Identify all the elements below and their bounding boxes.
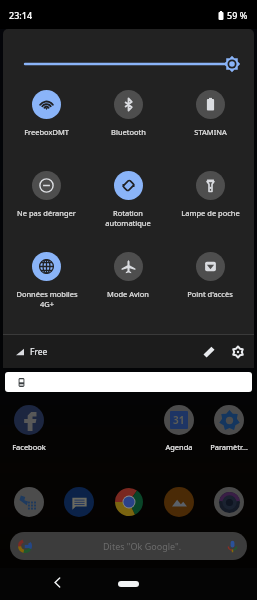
button[interactable]: Agenda — [164, 405, 194, 435]
button[interactable]: Téléphone — [14, 487, 44, 517]
staticText: Mode Avion — [107, 289, 149, 299]
button[interactable]: Chrome — [114, 487, 144, 517]
button[interactable]: Point d'accès — [169, 238, 251, 319]
button[interactable]: Messages — [64, 487, 94, 517]
staticText: FreeboxDMT — [24, 127, 69, 137]
button[interactable]: Paramètres — [214, 405, 244, 435]
staticText: STAMINA — [194, 127, 227, 137]
button[interactable]: Edit tiles — [197, 340, 221, 364]
button[interactable]: Brightness — [3, 29, 254, 76]
staticText: Facebook — [12, 442, 46, 452]
staticText: Paramètr… — [210, 442, 248, 452]
button[interactable]: Home — [118, 581, 139, 587]
staticText: Point d'accès — [187, 289, 233, 299]
button[interactable]: STAMINA — [169, 76, 251, 157]
staticText: 23:14 — [9, 9, 33, 21]
button[interactable]: Back — [48, 573, 66, 591]
button[interactable]: Données mobiles 4G+ — [6, 238, 87, 319]
button[interactable]: Settings — [226, 340, 250, 364]
staticText: Ne pas déranger — [17, 208, 76, 218]
staticText: Agenda — [165, 442, 193, 452]
button[interactable]: Galerie — [164, 487, 194, 517]
button[interactable]: Bluetooth — [87, 76, 169, 157]
staticText: Lampe de poche — [181, 208, 240, 218]
staticText: Dites "Ok Google". — [103, 540, 182, 552]
button[interactable]: Mode Avion — [87, 238, 169, 319]
button[interactable]: Facebook — [14, 405, 44, 435]
staticText: 59 % — [227, 9, 248, 21]
button[interactable]: Dites "Ok Google". — [10, 532, 247, 560]
button[interactable] — [5, 372, 252, 392]
staticText: Données mobiles 4G+ — [16, 289, 78, 309]
staticText: Bluetooth — [111, 127, 146, 137]
button[interactable]: Rotation automatique — [87, 157, 169, 238]
staticText: Free — [30, 346, 48, 358]
button[interactable]: Lampe de poche — [169, 157, 251, 238]
button[interactable]: Ne pas déranger — [6, 157, 87, 238]
staticText: 31 — [173, 413, 185, 427]
button[interactable]: Voice search — [224, 538, 240, 554]
staticText: Rotation automatique — [105, 208, 151, 228]
button[interactable]: Appareil photo — [214, 487, 244, 517]
button[interactable]: FreeboxDMT — [6, 76, 87, 157]
